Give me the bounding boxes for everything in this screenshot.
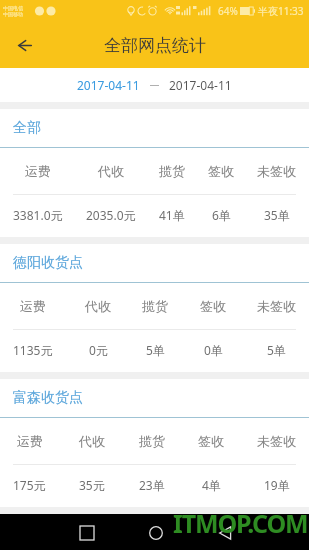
staticText: 0元 [89,342,108,358]
staticText: 签收 [208,163,234,179]
staticText: 全部 [13,119,41,137]
staticText: 23单 [139,477,165,493]
staticText: 揽货 [159,163,185,179]
button[interactable]: 主页 [140,517,171,548]
button[interactable]: 全部 [0,109,309,147]
staticText: 2017-04-11 [169,77,232,93]
staticText: 2017-04-11 [77,77,140,93]
staticText: 揽货 [139,433,165,449]
staticText: 富森收货点 [13,389,83,407]
button[interactable]: 返回 [209,517,240,548]
staticText: 3381.0元 [13,207,63,223]
staticText: 签收 [198,433,224,449]
staticText: 5单 [267,342,286,358]
staticText: 运费 [20,298,46,314]
staticText: 代收 [85,298,111,314]
staticText: 2035.0元 [86,207,136,223]
staticText: 未签收 [257,298,296,314]
button[interactable]: 最近任务 [71,517,102,548]
staticText: 5单 [146,342,165,358]
staticText: 4单 [202,477,221,493]
staticText: 代收 [98,163,124,179]
staticText: 未签收 [257,433,296,449]
button[interactable]: 返回 [2,23,46,67]
staticText: 35单 [264,207,290,223]
staticText: 未签收 [257,163,296,179]
staticText: 64% [218,4,238,18]
staticText: 揽货 [142,298,168,314]
staticText: 175元 [13,477,46,493]
staticText: 19单 [264,477,290,493]
staticText: 运费 [25,163,51,179]
staticText: 运费 [17,433,43,449]
staticText: 全部网点统计 [104,35,206,56]
staticText: 德阳收货点 [13,254,83,272]
staticText: 1135元 [13,342,53,358]
staticText: 代收 [79,433,105,449]
staticText: 中国移动 [3,11,23,17]
staticText: 6单 [212,207,231,223]
staticText: 0单 [204,342,223,358]
staticText: 签收 [200,298,226,314]
staticText: 半夜11:33 [258,4,304,18]
staticText: 41单 [159,207,185,223]
button[interactable]: 富森收货点 [0,379,309,417]
staticText: ITMOP.COM [173,506,308,540]
button[interactable]: 2017-04-11 [74,72,143,98]
button[interactable]: 德阳收货点 [0,244,309,282]
staticText: 中国电信 [3,5,23,11]
button[interactable]: 2017-04-11 [166,72,235,98]
staticText: 35元 [79,477,105,493]
